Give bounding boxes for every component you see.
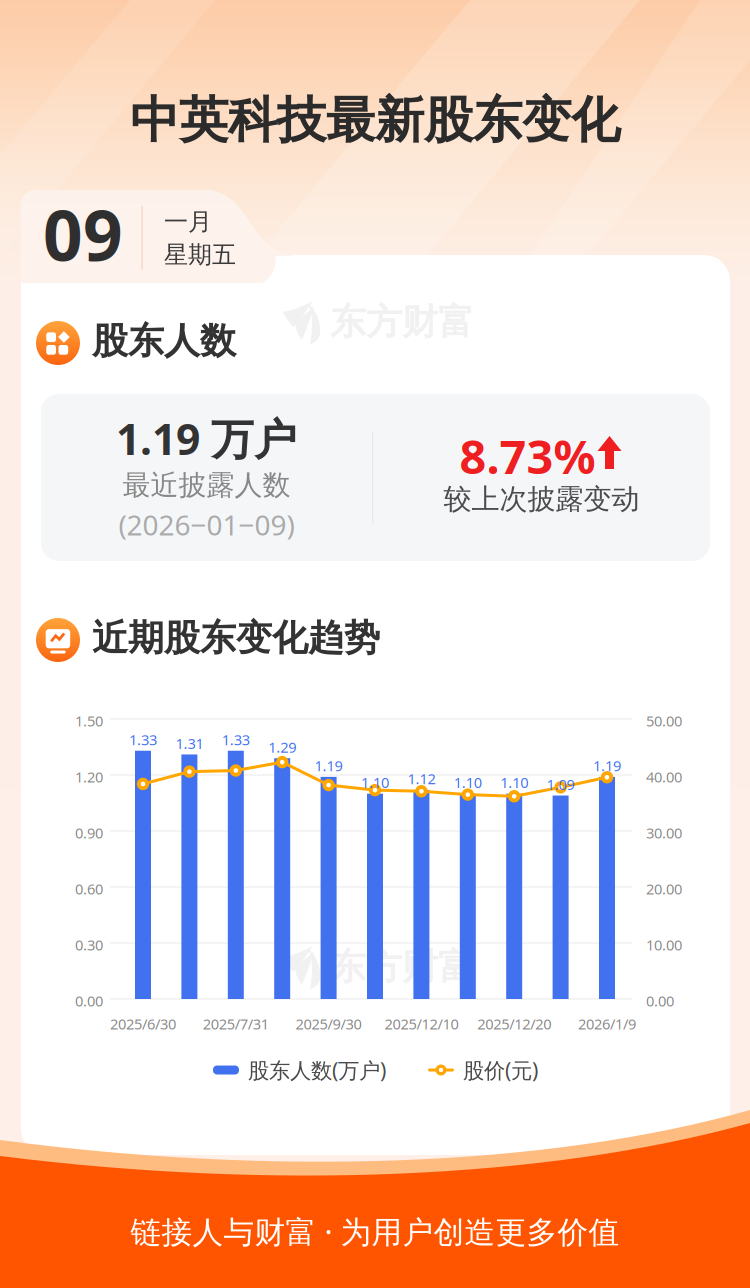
staticText: 1.33 <box>129 730 157 749</box>
staticText: 1.33 <box>222 730 250 749</box>
staticText: 10.00 <box>646 935 682 954</box>
staticText: 近期股东变化趋势 <box>92 616 380 660</box>
staticText: 股价(元) <box>463 1056 538 1084</box>
staticText: 0.00 <box>646 991 674 1010</box>
staticText: 1.09 <box>547 774 575 794</box>
staticText: 1.20 <box>75 767 103 786</box>
staticText: 1.19 <box>315 756 343 775</box>
staticText: 星期五 <box>164 240 236 269</box>
staticText: 中英科技最新股东变化 <box>130 90 620 151</box>
staticText: 2025/6/30 <box>110 1014 176 1033</box>
staticText: 30.00 <box>646 823 682 842</box>
staticText: 1.29 <box>268 737 296 757</box>
staticText: 20.00 <box>646 879 682 898</box>
staticText: 40.00 <box>646 767 682 786</box>
staticText: 0.30 <box>75 935 103 954</box>
staticText: 50.00 <box>646 711 682 730</box>
staticText: 1.10 <box>361 773 389 792</box>
staticText: 0.90 <box>75 823 103 842</box>
staticText: 2025/7/31 <box>203 1014 269 1033</box>
staticText: 8.73% <box>459 425 595 487</box>
staticText: 1.50 <box>75 711 103 730</box>
staticText: 东方财富 <box>330 300 474 344</box>
staticText: 1.10 <box>500 773 528 792</box>
staticText: 1.31 <box>175 733 203 753</box>
staticText: 0.00 <box>75 991 103 1010</box>
staticText: 0.60 <box>75 879 103 898</box>
staticText: 1.19 万户 <box>116 410 297 467</box>
staticText: 2026/1/9 <box>578 1014 636 1033</box>
staticText: 股东人数 <box>92 319 236 363</box>
staticText: 09 <box>43 188 123 280</box>
staticText: 2025/9/30 <box>296 1014 362 1033</box>
staticText: 最近披露人数 <box>122 468 290 502</box>
staticText: 链接人与财富 · 为用户创造更多价值 <box>130 1211 619 1252</box>
staticText: 股东人数(万户) <box>248 1056 386 1084</box>
staticText: 1.12 <box>407 769 435 788</box>
staticText: 东方财富 <box>330 945 474 989</box>
staticText: 较上次披露变动 <box>443 482 639 516</box>
staticText: (2026−01−09) <box>118 506 294 543</box>
staticText: 2025/12/10 <box>384 1014 458 1033</box>
staticText: 1.19 <box>593 756 621 775</box>
staticText: 一月 <box>164 207 212 236</box>
staticText: 2025/12/20 <box>477 1014 551 1033</box>
staticText: 1.10 <box>454 773 482 792</box>
